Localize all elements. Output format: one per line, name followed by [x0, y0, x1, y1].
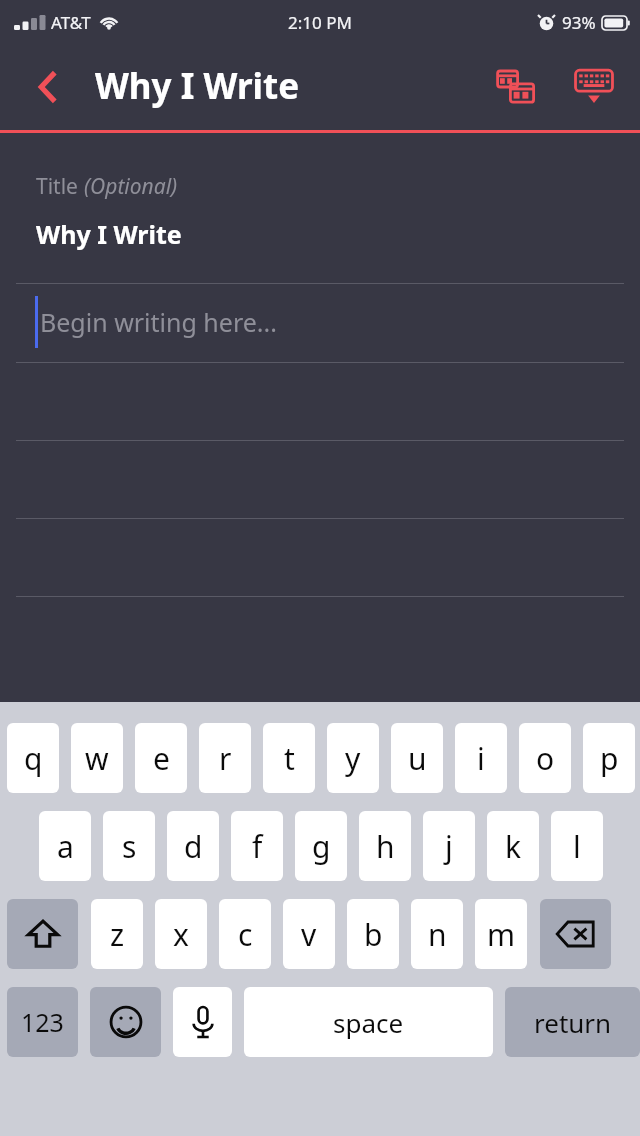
- button[interactable]: 123: [7, 987, 78, 1057]
- staticText: m: [487, 914, 516, 955]
- button[interactable]: b: [347, 899, 399, 969]
- staticText: Title: [36, 172, 84, 201]
- staticText: Why I Write: [95, 62, 300, 110]
- staticText: Begin writing here...: [40, 305, 277, 339]
- button[interactable]: l: [551, 811, 603, 881]
- button[interactable]: Shift: [7, 899, 78, 969]
- staticText: z: [110, 914, 125, 955]
- staticText: t: [284, 738, 295, 779]
- button[interactable]: Dictation: [173, 987, 232, 1057]
- staticText: 2:10 PM: [288, 11, 352, 34]
- button[interactable]: z: [91, 899, 143, 969]
- staticText: o: [536, 738, 555, 779]
- staticText: r: [219, 738, 232, 779]
- button[interactable]: r: [199, 723, 251, 793]
- staticText: h: [376, 826, 395, 867]
- button[interactable]: t: [263, 723, 315, 793]
- button[interactable]: x: [155, 899, 207, 969]
- staticText: n: [428, 914, 447, 955]
- staticText: u: [408, 738, 427, 779]
- button[interactable]: f: [231, 811, 283, 881]
- staticText: s: [122, 826, 137, 867]
- button[interactable]: e: [135, 723, 187, 793]
- staticText: p: [600, 738, 619, 779]
- staticText: q: [24, 738, 43, 779]
- staticText: y: [345, 738, 361, 779]
- staticText: AT&T: [51, 11, 91, 34]
- button[interactable]: g: [295, 811, 347, 881]
- staticText: f: [252, 826, 263, 867]
- staticText: k: [505, 826, 522, 867]
- staticText: e: [153, 738, 170, 779]
- staticText: x: [173, 914, 189, 955]
- button[interactable]: m: [475, 899, 527, 969]
- staticText: v: [301, 914, 317, 955]
- button[interactable]: v: [283, 899, 335, 969]
- button[interactable]: w: [71, 723, 123, 793]
- staticText: c: [238, 914, 253, 955]
- button[interactable]: a: [39, 811, 91, 881]
- staticText: 123: [21, 1005, 64, 1039]
- button[interactable]: Back: [22, 59, 74, 115]
- button[interactable]: o: [519, 723, 571, 793]
- staticText: d: [184, 826, 203, 867]
- button[interactable]: p: [583, 723, 635, 793]
- button[interactable]: d: [167, 811, 219, 881]
- button[interactable]: u: [391, 723, 443, 793]
- button[interactable]: space: [244, 987, 493, 1057]
- staticText: g: [312, 826, 331, 867]
- staticText: l: [573, 826, 581, 867]
- button[interactable]: k: [487, 811, 539, 881]
- staticText: w: [85, 738, 109, 779]
- staticText: 93%: [562, 11, 596, 34]
- button[interactable]: h: [359, 811, 411, 881]
- button[interactable]: Backspace: [540, 899, 611, 969]
- staticText: (Optional): [84, 172, 178, 201]
- staticText: b: [364, 914, 383, 955]
- button[interactable]: i: [455, 723, 507, 793]
- staticText: space: [333, 1005, 404, 1040]
- button[interactable]: Emoji: [90, 987, 161, 1057]
- staticText: return: [534, 1005, 612, 1040]
- staticText: Why I Write: [36, 217, 182, 251]
- button[interactable]: n: [411, 899, 463, 969]
- button[interactable]: return: [505, 987, 640, 1057]
- staticText: i: [477, 738, 485, 779]
- button[interactable]: j: [423, 811, 475, 881]
- staticText: a: [57, 826, 74, 867]
- button[interactable]: Layout: [488, 59, 544, 115]
- button[interactable]: q: [7, 723, 59, 793]
- staticText: j: [445, 826, 453, 867]
- button[interactable]: s: [103, 811, 155, 881]
- button[interactable]: Hide keyboard: [566, 59, 622, 115]
- button[interactable]: y: [327, 723, 379, 793]
- button[interactable]: c: [219, 899, 271, 969]
